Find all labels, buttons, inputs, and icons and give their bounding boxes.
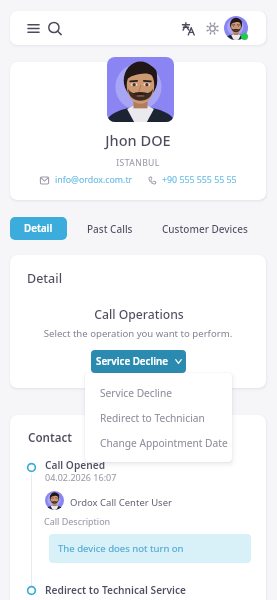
staticText: Service Decline: [100, 386, 173, 400]
staticText: Service Decline: [96, 355, 169, 368]
button[interactable]: Search: [46, 19, 64, 37]
button[interactable]: Customer Devices: [152, 217, 258, 240]
staticText: Change Appointment Date: [100, 436, 228, 450]
staticText: Detail: [24, 222, 53, 235]
staticText: Call Description: [44, 515, 111, 527]
staticText: Contact: [28, 430, 72, 446]
button[interactable]: Profile: [224, 16, 248, 40]
staticText: Redirect to Technician: [100, 411, 205, 425]
button[interactable]: Menu: [23, 19, 43, 37]
button[interactable]: Past Calls: [77, 217, 143, 240]
button[interactable]: Detail: [10, 217, 67, 240]
staticText: ISTANBUL: [10, 157, 266, 169]
staticText: Call Opened: [45, 458, 106, 472]
staticText: Select the operation you want to perform…: [10, 327, 266, 340]
button[interactable]: Redirect to Technician: [85, 405, 232, 430]
staticText: Call Operations: [11, 306, 267, 323]
button[interactable]: Service Decline: [85, 380, 232, 405]
staticText: info@ordox.com.tr: [55, 174, 133, 186]
button[interactable]: Translate: [180, 20, 196, 36]
staticText: +90 555 555 55 55: [162, 174, 237, 186]
staticText: Ordox Call Center User: [70, 496, 172, 509]
staticText: Redirect to Technical Service: [45, 583, 187, 597]
staticText: Detail: [27, 270, 63, 287]
button[interactable]: Change Appointment Date: [85, 430, 232, 455]
staticText: Past Calls: [87, 222, 133, 236]
staticText: Customer Devices: [162, 222, 248, 236]
staticText: Jhon DOE: [10, 130, 266, 150]
staticText: 04.02.2026 16:07: [45, 471, 117, 483]
button[interactable]: Brightness: [204, 20, 220, 36]
staticText: The device does not turn on: [58, 542, 184, 555]
button[interactable]: Service Decline: [91, 350, 186, 373]
